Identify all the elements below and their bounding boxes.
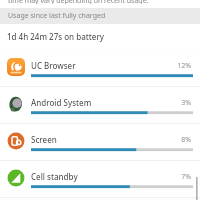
button[interactable]: Cell standby <box>0 161 200 198</box>
staticText: 12% <box>0 61 191 71</box>
staticText: 3% <box>0 98 191 108</box>
staticText: 1d 4h 24m 27s on battery <box>7 31 105 42</box>
staticText: time may vary depending on recent usage. <box>8 0 149 4</box>
button[interactable]: UC Browser <box>0 50 200 87</box>
staticText: Usage since last fully charged <box>8 11 106 21</box>
staticText: Screen <box>31 134 57 145</box>
staticText: Cell standby <box>31 171 78 182</box>
staticText: 8% <box>0 135 191 145</box>
button[interactable]: Screen <box>0 124 200 161</box>
button[interactable]: Android System <box>0 87 200 124</box>
staticText: Android System <box>31 97 92 108</box>
staticText: 7% <box>0 172 191 182</box>
staticText: UC Browser <box>31 60 76 71</box>
